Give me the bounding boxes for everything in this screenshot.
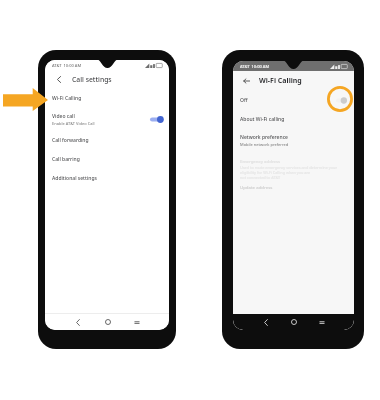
staticText: Call forwarding: [52, 137, 89, 144]
staticText: Mobile network preferred: [240, 142, 289, 147]
staticText: Additional settings: [52, 175, 97, 182]
button[interactable]: Off: [233, 91, 354, 110]
button[interactable]: Back: [45, 70, 169, 89]
button[interactable]: Home: [93, 314, 122, 330]
button[interactable]: Back: [63, 314, 93, 330]
staticText: Wi-Fi Calling: [259, 76, 302, 86]
button[interactable]: Recent apps: [308, 314, 336, 330]
staticText: Wi-Fi Calling: [52, 95, 82, 102]
button[interactable]: Call forwarding: [45, 131, 169, 150]
other: Back: [45, 70, 72, 89]
staticText: Emergency address: [240, 158, 281, 164]
staticText: Call barring: [52, 156, 80, 163]
staticText: Enable AT&T Video Call: [52, 121, 95, 126]
button[interactable]: Back: [233, 71, 354, 91]
button[interactable]: Video call: [45, 108, 169, 131]
button[interactable]: Network preference: [233, 129, 354, 152]
staticText: Call settings: [72, 75, 112, 84]
staticText: Off: [240, 97, 336, 104]
button[interactable]: About Wi-Fi calling: [233, 110, 354, 129]
staticText: Video call: [52, 113, 75, 120]
other: Back: [233, 71, 259, 91]
button[interactable]: Update address: [240, 184, 273, 190]
staticText: About Wi-Fi calling: [240, 116, 285, 123]
button[interactable]: Call barring: [45, 150, 169, 169]
button[interactable]: Back: [251, 314, 280, 330]
staticText: Network preference: [240, 134, 288, 141]
button[interactable]: Wi-Fi Calling: [45, 89, 169, 108]
staticText: AT&T 10:00 AM: [52, 63, 82, 68]
button[interactable]: Additional settings: [45, 169, 169, 188]
staticText: Used to route emergency services and det…: [240, 165, 337, 180]
staticText: AT&T 10:00 AM: [240, 64, 270, 69]
button[interactable]: Recent apps: [122, 314, 151, 330]
button[interactable]: Home: [280, 314, 308, 330]
